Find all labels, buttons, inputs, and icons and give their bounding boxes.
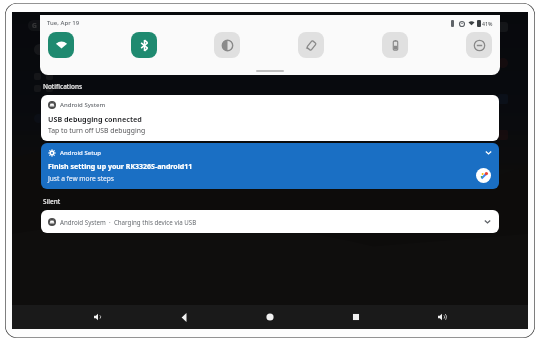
button[interactable]: Do Not Disturb [466,32,492,58]
button[interactable]: Expand [484,148,493,157]
staticText: 41% [482,20,493,27]
staticText: Just a few more steps [48,174,114,183]
button[interactable]: Android Setup [41,143,499,189]
button[interactable]: Setup wizard [476,168,491,183]
staticText: Tue, Apr 19 [47,19,80,27]
button[interactable]: Dark theme [214,32,240,58]
staticText: Android System [60,101,106,109]
button[interactable]: Battery Saver [382,32,408,58]
button[interactable]: Wi-Fi [48,32,74,58]
staticText: Android System · Charging this device vi… [60,218,197,226]
button[interactable]: Volume down [88,307,108,327]
button[interactable]: Android System · Charging this device vi… [41,210,499,233]
button[interactable]: Volume up [432,307,452,327]
button[interactable]: G [28,20,80,31]
staticText: USB debugging connected [48,114,142,124]
staticText: Android Setup [60,149,101,157]
button[interactable]: Home [260,307,280,327]
staticText: Silent [43,197,61,206]
staticText: Notifications [43,82,83,91]
button[interactable]: Bluetooth [131,32,157,58]
button[interactable]: Recent apps [346,307,366,327]
button[interactable]: Back [174,307,194,327]
staticText: Tap to turn off USB debugging [48,126,146,135]
staticText: Finish setting up your RK3326S-android11 [48,162,193,172]
staticText: G [32,21,37,30]
button[interactable]: Auto-rotate [298,32,324,58]
button[interactable]: Expand [483,217,492,226]
button[interactable]: Android System [41,95,499,141]
